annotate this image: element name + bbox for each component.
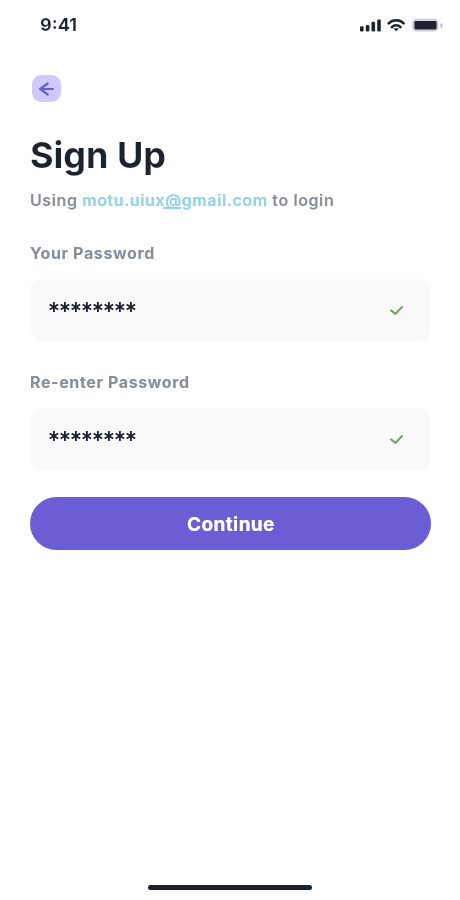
staticText: Re-enter Password	[30, 372, 190, 391]
other: Valid	[390, 435, 403, 444]
staticText: Sign Up	[30, 133, 167, 177]
staticText: 9:41	[40, 14, 77, 36]
other: Valid	[390, 306, 403, 315]
staticText: Using motu.uiux@gmail.com to login	[30, 190, 335, 209]
button[interactable]: Re-enter Password	[30, 408, 431, 470]
button[interactable]: Back	[32, 75, 61, 102]
button[interactable]: Your Password	[30, 279, 431, 341]
other: Signal, Wi-Fi and battery status	[356, 16, 448, 36]
button[interactable]: Continue	[30, 497, 431, 550]
staticText: Your Password	[30, 243, 155, 262]
staticText: Continue	[187, 513, 275, 536]
